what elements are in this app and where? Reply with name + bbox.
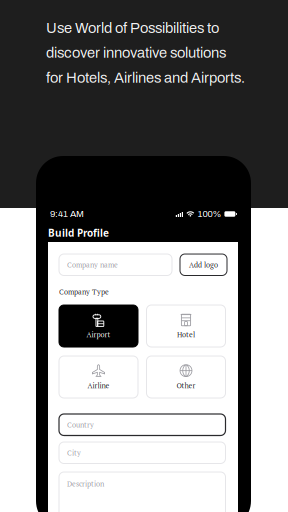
button[interactable]: Add logo <box>180 254 227 275</box>
staticText: Country <box>67 420 94 430</box>
staticText: Airport <box>86 329 110 339</box>
button[interactable]: Airport <box>59 305 138 347</box>
staticText: Add logo <box>189 260 218 270</box>
staticText: 100% <box>197 209 221 219</box>
staticText: City <box>67 448 81 458</box>
staticText: Build Profile <box>48 226 109 240</box>
staticText: Hotel <box>177 329 195 339</box>
button[interactable]: Description <box>59 472 225 512</box>
staticText: for Hotels, Airlines and Airports. <box>46 70 245 86</box>
staticText: Airline <box>87 380 109 390</box>
button[interactable]: Airline <box>59 356 138 398</box>
staticText: Company Type <box>59 287 109 297</box>
staticText: Other <box>176 380 195 390</box>
staticText: 9:41 AM <box>50 209 84 219</box>
button[interactable]: Country <box>59 414 225 435</box>
staticText: discover innovative solutions <box>46 45 226 61</box>
button[interactable]: Hotel <box>146 305 225 347</box>
staticText: Company name <box>67 260 118 270</box>
staticText: Description <box>67 479 104 489</box>
button[interactable]: Other <box>146 356 225 398</box>
button[interactable]: Company name <box>59 254 172 275</box>
staticText: Use World of Possibilities to <box>46 20 219 36</box>
button[interactable]: City <box>59 442 225 463</box>
